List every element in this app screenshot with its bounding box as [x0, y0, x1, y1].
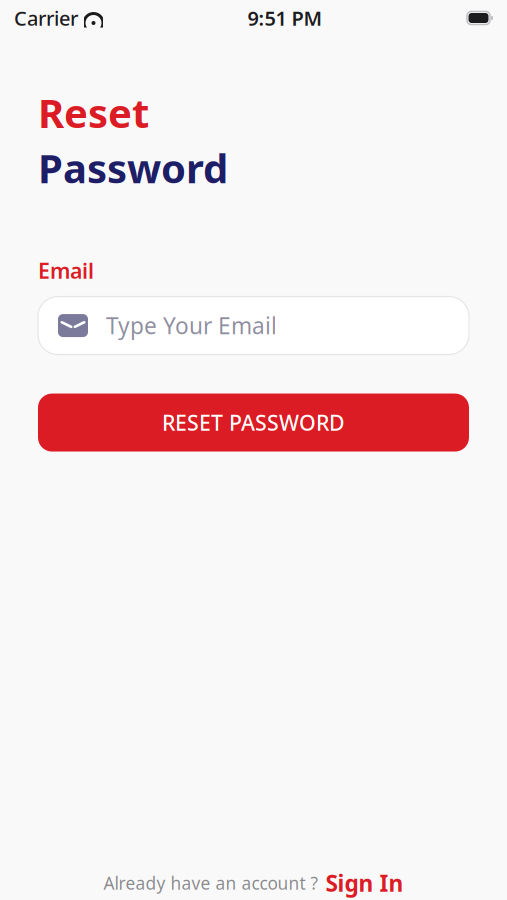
- staticText: Type Your Email: [106, 310, 277, 341]
- staticText: Reset: [38, 86, 149, 139]
- staticText: Carrier: [14, 5, 78, 31]
- button[interactable]: Already have an account ?: [103, 868, 403, 898]
- staticText: RESET PASSWORD: [162, 408, 345, 437]
- staticText: Sign In: [325, 868, 403, 898]
- staticText: Email: [38, 256, 94, 284]
- staticText: Already have an account ?: [103, 871, 318, 894]
- staticText: Password: [38, 141, 228, 194]
- staticText: 9:51 PM: [247, 5, 322, 31]
- button[interactable]: RESET PASSWORD: [38, 394, 469, 452]
